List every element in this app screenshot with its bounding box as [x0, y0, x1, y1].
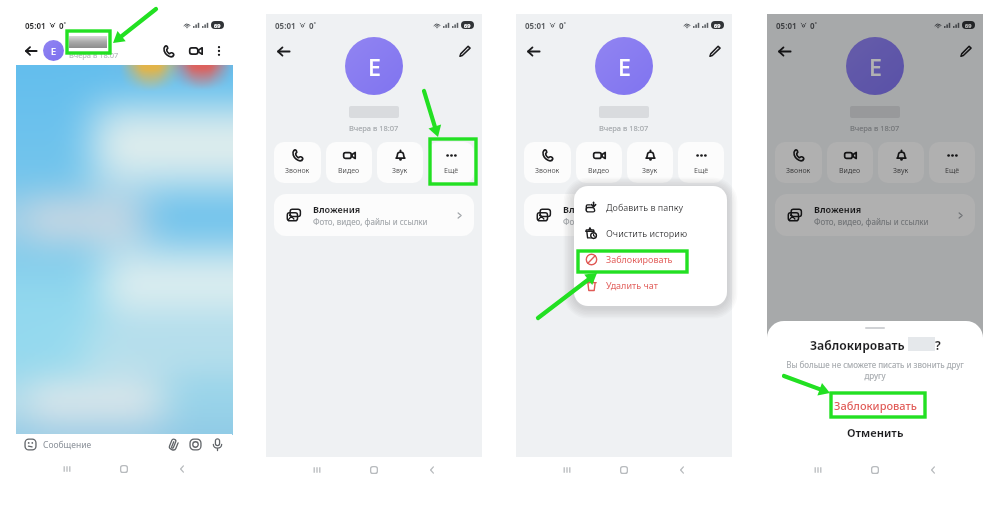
button[interactable]: Вложения	[524, 194, 724, 236]
staticText: Заблокировать	[834, 398, 917, 413]
staticText: 69	[965, 22, 972, 29]
button[interactable]: Удалить чат	[574, 272, 727, 298]
staticText: Заблокировать	[810, 337, 908, 353]
button[interactable]: Edit	[706, 42, 724, 60]
staticText: Сообщение	[43, 439, 92, 451]
staticText: 05:01	[525, 20, 546, 31]
staticText: Ещё	[945, 166, 960, 176]
staticText: Звук	[642, 166, 658, 176]
staticText: E	[51, 45, 57, 57]
button[interactable]: Видео	[827, 142, 873, 183]
button[interactable]: Recents	[811, 463, 825, 477]
staticText: Вчера в 18:07	[349, 123, 399, 133]
button[interactable]: Camera	[189, 438, 202, 451]
staticText: Видео	[588, 166, 610, 176]
staticText: Фото, видео, файлы и ссылки	[563, 216, 678, 227]
button[interactable]: Recents	[310, 463, 324, 477]
staticText: 05:01	[776, 20, 797, 31]
button[interactable]: Звонок	[524, 142, 571, 183]
button[interactable]: Edit	[456, 42, 474, 60]
staticText: Вы больше не сможете писать и звонить др…	[781, 359, 969, 381]
button[interactable]: Вложения	[775, 194, 975, 236]
button[interactable]: Home	[617, 463, 631, 477]
button[interactable]: Recents	[560, 463, 574, 477]
button[interactable]: Звук	[878, 142, 924, 183]
button[interactable]: Stickers	[24, 438, 37, 451]
button[interactable]: Back	[926, 463, 940, 477]
staticText: E	[368, 51, 381, 82]
staticText: Вложения	[814, 203, 862, 215]
staticText: 69	[714, 22, 721, 29]
staticText: E	[869, 51, 882, 82]
button[interactable]: Attach file	[167, 438, 180, 451]
button[interactable]: Звонок	[775, 142, 822, 183]
button[interactable]: Back	[524, 42, 542, 60]
button[interactable]: Видео	[326, 142, 372, 183]
staticText: Вчера в 18:07	[69, 50, 119, 60]
button[interactable]: Back	[175, 462, 189, 476]
staticText: 05:01	[25, 20, 46, 31]
button[interactable]: Back	[926, 463, 940, 477]
button[interactable]: Вложения	[274, 194, 474, 236]
staticText: Фото, видео, файлы и ссылки	[313, 216, 428, 227]
staticText: 05:01	[275, 20, 296, 31]
button[interactable]: Home	[117, 462, 131, 476]
button[interactable]: Back	[274, 42, 292, 60]
button[interactable]: Видео	[576, 142, 622, 183]
button[interactable]: More options	[211, 43, 227, 59]
staticText: 69	[464, 22, 471, 29]
button[interactable]: Recents	[811, 463, 825, 477]
button[interactable]: Back	[21, 41, 40, 60]
button[interactable]: Back	[775, 42, 793, 60]
staticText: Видео	[839, 166, 861, 176]
button[interactable]: Очистить историю	[574, 220, 727, 246]
button[interactable]: Звук	[377, 142, 423, 183]
button[interactable]: Звук	[627, 142, 673, 183]
button[interactable]: Добавить в папку	[574, 194, 727, 220]
button[interactable]: Home	[367, 463, 381, 477]
staticText: Вчера в 18:07	[599, 123, 649, 133]
staticText: Заблокировать	[606, 253, 673, 265]
staticText: 69	[214, 22, 221, 29]
button[interactable]: Voice message	[211, 438, 224, 451]
staticText: 0˚	[810, 20, 818, 31]
staticText: Звонок	[535, 166, 560, 176]
staticText: Удалить чат	[606, 279, 658, 291]
staticText: E	[618, 51, 631, 82]
button[interactable]: Home	[868, 463, 882, 477]
button[interactable]: Ещё	[428, 142, 474, 183]
staticText: 0˚	[309, 20, 317, 31]
button[interactable]: Ещё	[929, 142, 975, 183]
staticText: Вчера в 18:07	[850, 123, 900, 133]
staticText: Звук	[893, 166, 909, 176]
button[interactable]: Video call	[185, 40, 207, 62]
button[interactable]: Back	[425, 463, 439, 477]
button[interactable]: Заблокировать	[574, 246, 727, 272]
button[interactable]: Ещё	[678, 142, 724, 183]
staticText: Фото, видео, файлы и ссылки	[814, 216, 929, 227]
staticText: Вложения	[313, 203, 361, 215]
staticText: Видео	[338, 166, 360, 176]
staticText: Звонок	[285, 166, 310, 176]
staticText: Звук	[392, 166, 408, 176]
button[interactable]: Call	[157, 40, 179, 62]
button[interactable]: Заблокировать	[767, 394, 983, 416]
staticText: Очистить историю	[606, 227, 688, 239]
staticText: 0˚	[59, 20, 67, 31]
button[interactable]: Back	[675, 463, 689, 477]
staticText: Вложения	[563, 203, 611, 215]
staticText: ?	[935, 337, 941, 353]
staticText: Ещё	[444, 166, 459, 176]
button[interactable]: Отменить	[767, 421, 983, 443]
button[interactable]: Home	[868, 463, 882, 477]
staticText: 0˚	[559, 20, 567, 31]
button[interactable]: Recents	[60, 462, 74, 476]
button[interactable]: Edit	[957, 42, 975, 60]
button[interactable]: Звонок	[274, 142, 321, 183]
staticText: Ещё	[694, 166, 709, 176]
staticText: Добавить в папку	[606, 201, 684, 213]
staticText: Звонок	[786, 166, 811, 176]
staticText: Отменить	[847, 425, 904, 440]
